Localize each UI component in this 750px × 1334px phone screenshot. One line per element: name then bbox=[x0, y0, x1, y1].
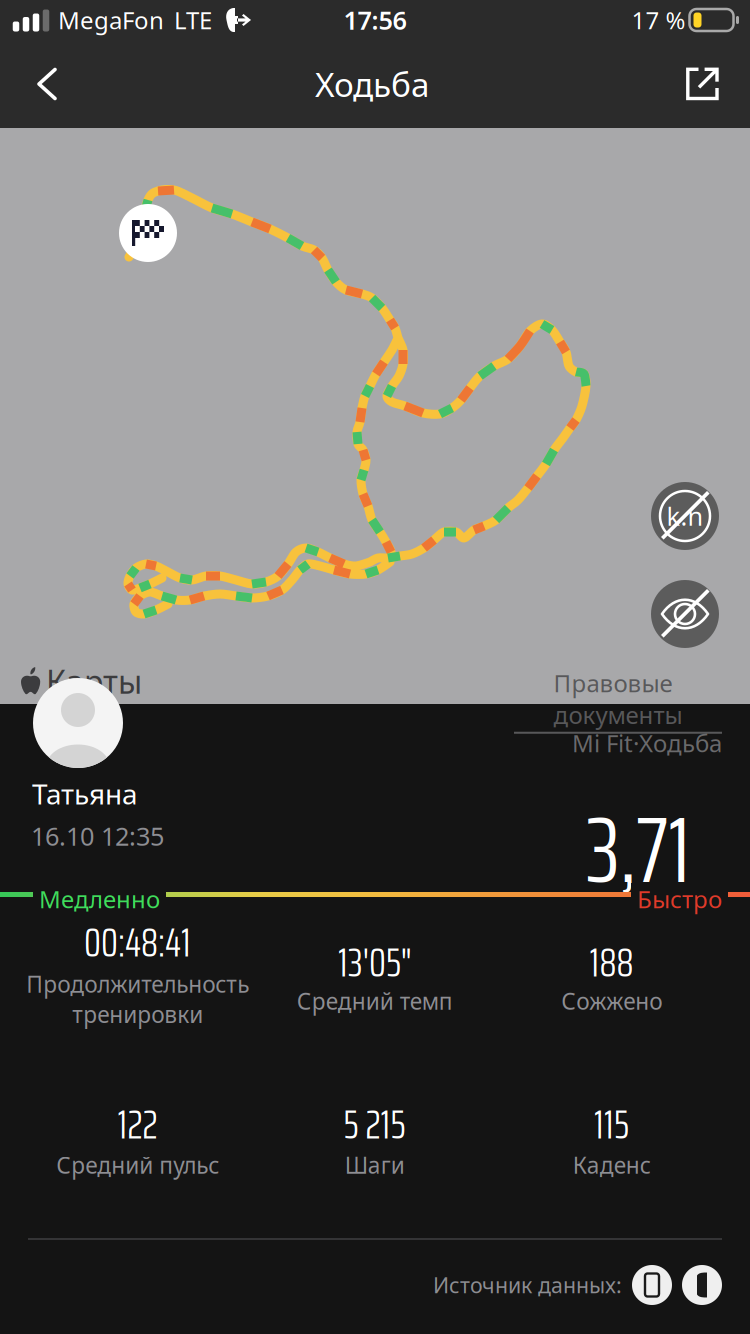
staticText: 17:56 bbox=[343, 3, 406, 37]
button[interactable]: Back bbox=[0, 40, 83, 128]
staticText: Шаги bbox=[344, 1150, 404, 1180]
button[interactable]: Phone data source bbox=[632, 1265, 672, 1305]
staticText: 115 bbox=[594, 1093, 629, 1156]
button[interactable]: Speed units bbox=[651, 482, 719, 550]
staticText: Ходьба bbox=[315, 62, 430, 106]
staticText: км bbox=[695, 885, 722, 913]
staticText: 16.10 12:35 bbox=[31, 819, 164, 853]
staticText: 13'05" bbox=[338, 931, 411, 994]
staticText: 17 % bbox=[631, 4, 685, 36]
button[interactable]: Share bbox=[662, 40, 750, 128]
staticText: Карты bbox=[46, 660, 142, 702]
staticText: Татьяна bbox=[32, 775, 138, 812]
staticText: LTE bbox=[174, 4, 212, 36]
staticText: 122 bbox=[117, 1093, 157, 1156]
staticText: Средний темп bbox=[296, 986, 452, 1016]
staticText: Сожжено bbox=[561, 986, 662, 1016]
button[interactable]: Band data source bbox=[682, 1265, 722, 1305]
staticText: 3,71 bbox=[586, 776, 690, 923]
staticText: 5 215 bbox=[343, 1093, 405, 1156]
staticText: Mi Fit·Ходьба bbox=[572, 727, 722, 759]
staticText: Правовые документы bbox=[553, 667, 682, 731]
button[interactable]: Правовые документы bbox=[514, 667, 722, 734]
staticText: Каденс bbox=[572, 1150, 650, 1180]
staticText: k.n bbox=[666, 499, 703, 533]
staticText: Источник данных: bbox=[433, 1271, 622, 1299]
staticText: Средний пульс bbox=[56, 1150, 219, 1180]
staticText: Быстро bbox=[637, 883, 722, 915]
button[interactable]: Hide map details bbox=[651, 580, 719, 648]
staticText: Продолжительность тренировки bbox=[26, 969, 249, 1029]
staticText: Медленно bbox=[39, 883, 160, 915]
staticText: 188 bbox=[589, 931, 633, 994]
staticText: MegaFon bbox=[58, 4, 164, 36]
staticText: 00:48:41 bbox=[84, 911, 191, 974]
